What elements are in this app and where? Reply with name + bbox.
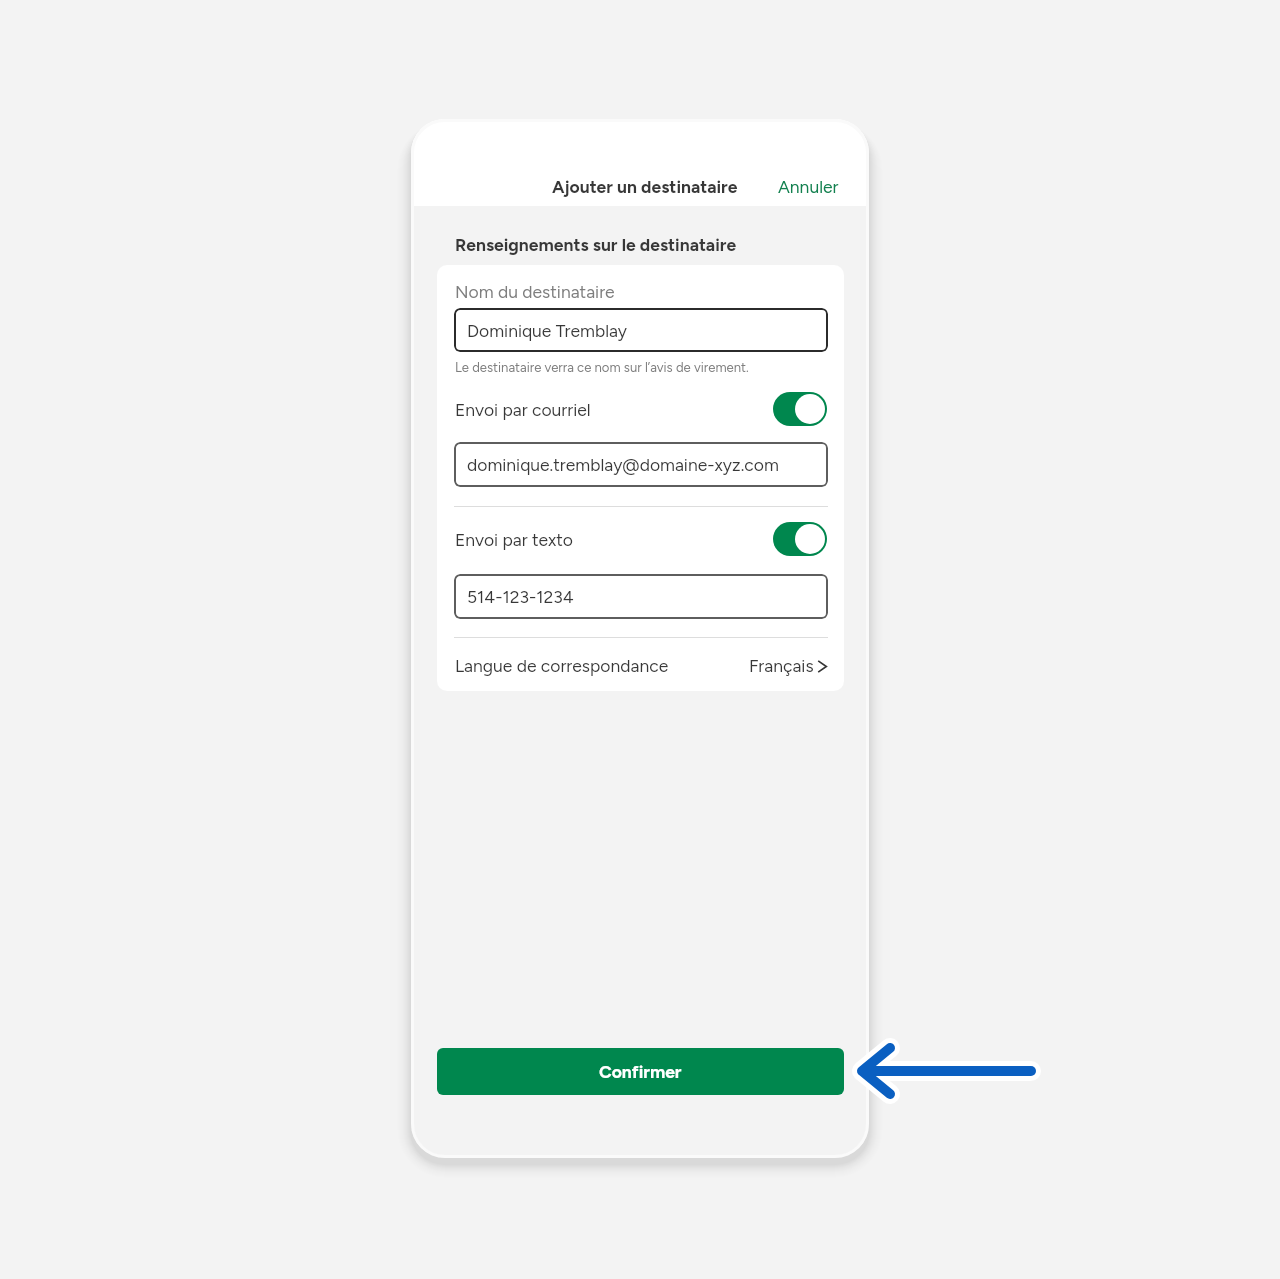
staticText: Dominique Tremblay bbox=[467, 320, 628, 341]
button[interactable]: 514-123-1234 bbox=[454, 574, 828, 619]
staticText: Confirmer bbox=[599, 1061, 682, 1082]
staticText: Annuler bbox=[778, 176, 839, 197]
staticText: Le destinataire verra ce nom sur l’avis … bbox=[455, 360, 749, 376]
button[interactable]: Envoi par texto bbox=[773, 522, 827, 556]
staticText: Envoi par texto bbox=[455, 529, 573, 550]
staticText: Ajouter un destinataire bbox=[552, 176, 738, 197]
button[interactable]: Dominique Tremblay bbox=[454, 308, 828, 352]
button[interactable]: Envoi par courriel bbox=[773, 392, 827, 426]
button[interactable]: Langue de correspondance bbox=[454, 649, 828, 681]
staticText: Nom du destinataire bbox=[455, 281, 615, 302]
staticText: Renseignements sur le destinataire bbox=[455, 234, 737, 255]
staticText: Français bbox=[749, 655, 814, 676]
staticText: Langue de correspondance bbox=[455, 655, 669, 676]
button[interactable]: Annuler bbox=[771, 169, 846, 204]
staticText: 514-123-1234 bbox=[467, 586, 574, 607]
staticText: dominique.tremblay@domaine-xyz.com bbox=[467, 454, 779, 475]
button[interactable]: dominique.tremblay@domaine-xyz.com bbox=[454, 442, 828, 487]
other: Pointer vers Confirmer bbox=[840, 1026, 1050, 1116]
staticText: Envoi par courriel bbox=[455, 399, 591, 420]
button[interactable]: Confirmer bbox=[437, 1048, 844, 1095]
